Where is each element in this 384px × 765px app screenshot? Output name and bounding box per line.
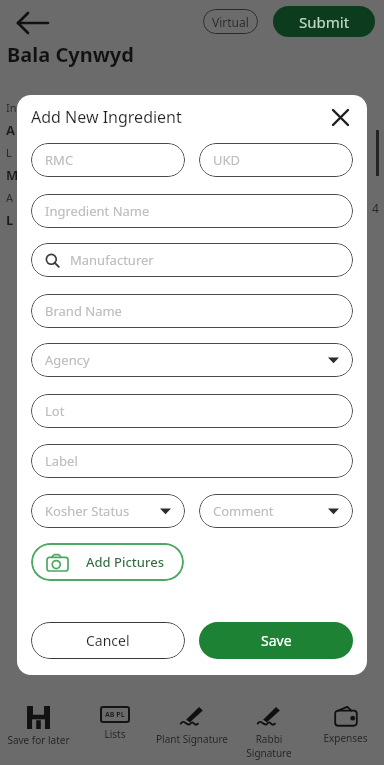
- staticText: L: [6, 145, 12, 160]
- button[interactable]: Virtual: [203, 9, 258, 34]
- button[interactable]: AB PL: [76, 700, 153, 765]
- button[interactable]: Brand Name: [31, 294, 353, 328]
- button[interactable]: RMC: [31, 143, 185, 177]
- button[interactable]: Add Pictures: [31, 543, 184, 581]
- staticText: Kosher Status: [45, 502, 130, 520]
- staticText: Save for later: [7, 733, 70, 747]
- staticText: AB PL: [105, 710, 125, 720]
- staticText: Agency: [45, 351, 90, 369]
- staticText: Brand Name: [45, 302, 122, 320]
- button[interactable]: Manufacturer: [31, 243, 353, 277]
- button[interactable]: Save for later: [0, 700, 76, 765]
- button[interactable]: Agency: [31, 343, 353, 377]
- button[interactable]: Save: [199, 622, 353, 659]
- staticText: Save: [261, 631, 292, 650]
- button[interactable]: Close: [327, 104, 353, 130]
- staticText: Ingredient Name: [45, 202, 150, 220]
- staticText: Lists: [104, 727, 126, 741]
- button[interactable]: Lot: [31, 394, 353, 428]
- staticText: A: [6, 121, 15, 139]
- button[interactable]: Plant Signature: [153, 700, 230, 765]
- staticText: M: [6, 166, 19, 184]
- staticText: In: [6, 100, 17, 115]
- button[interactable]: Ingredient Name: [31, 194, 353, 228]
- staticText: Bala Cynwyd: [7, 41, 134, 68]
- staticText: Add Pictures: [86, 553, 164, 571]
- staticText: Manufacturer: [70, 251, 154, 269]
- staticText: Rabbi Signature: [246, 732, 292, 760]
- staticText: Label: [45, 452, 78, 470]
- staticText: L: [6, 211, 14, 229]
- button[interactable]: Back: [16, 14, 50, 32]
- button[interactable]: UKD: [199, 143, 353, 177]
- button[interactable]: Kosher Status: [31, 494, 185, 528]
- button[interactable]: Submit: [273, 6, 375, 37]
- staticText: Submit: [299, 12, 350, 32]
- staticText: UKD: [213, 151, 241, 169]
- button[interactable]: Rabbi Signature: [230, 700, 307, 765]
- staticText: Add New Ingredient: [31, 106, 327, 128]
- button[interactable]: Comment: [199, 494, 353, 528]
- staticText: Plant Signature: [156, 732, 228, 746]
- staticText: Virtual: [212, 14, 249, 30]
- button[interactable]: Cancel: [31, 622, 185, 659]
- staticText: Expenses: [323, 731, 368, 745]
- staticText: 4: [372, 200, 379, 216]
- staticText: Lot: [45, 402, 65, 420]
- staticText: A: [6, 190, 14, 205]
- staticText: Cancel: [86, 631, 130, 650]
- staticText: RMC: [45, 151, 74, 169]
- button[interactable]: Expenses: [307, 700, 384, 765]
- staticText: Comment: [213, 502, 274, 520]
- button[interactable]: Label: [31, 444, 353, 478]
